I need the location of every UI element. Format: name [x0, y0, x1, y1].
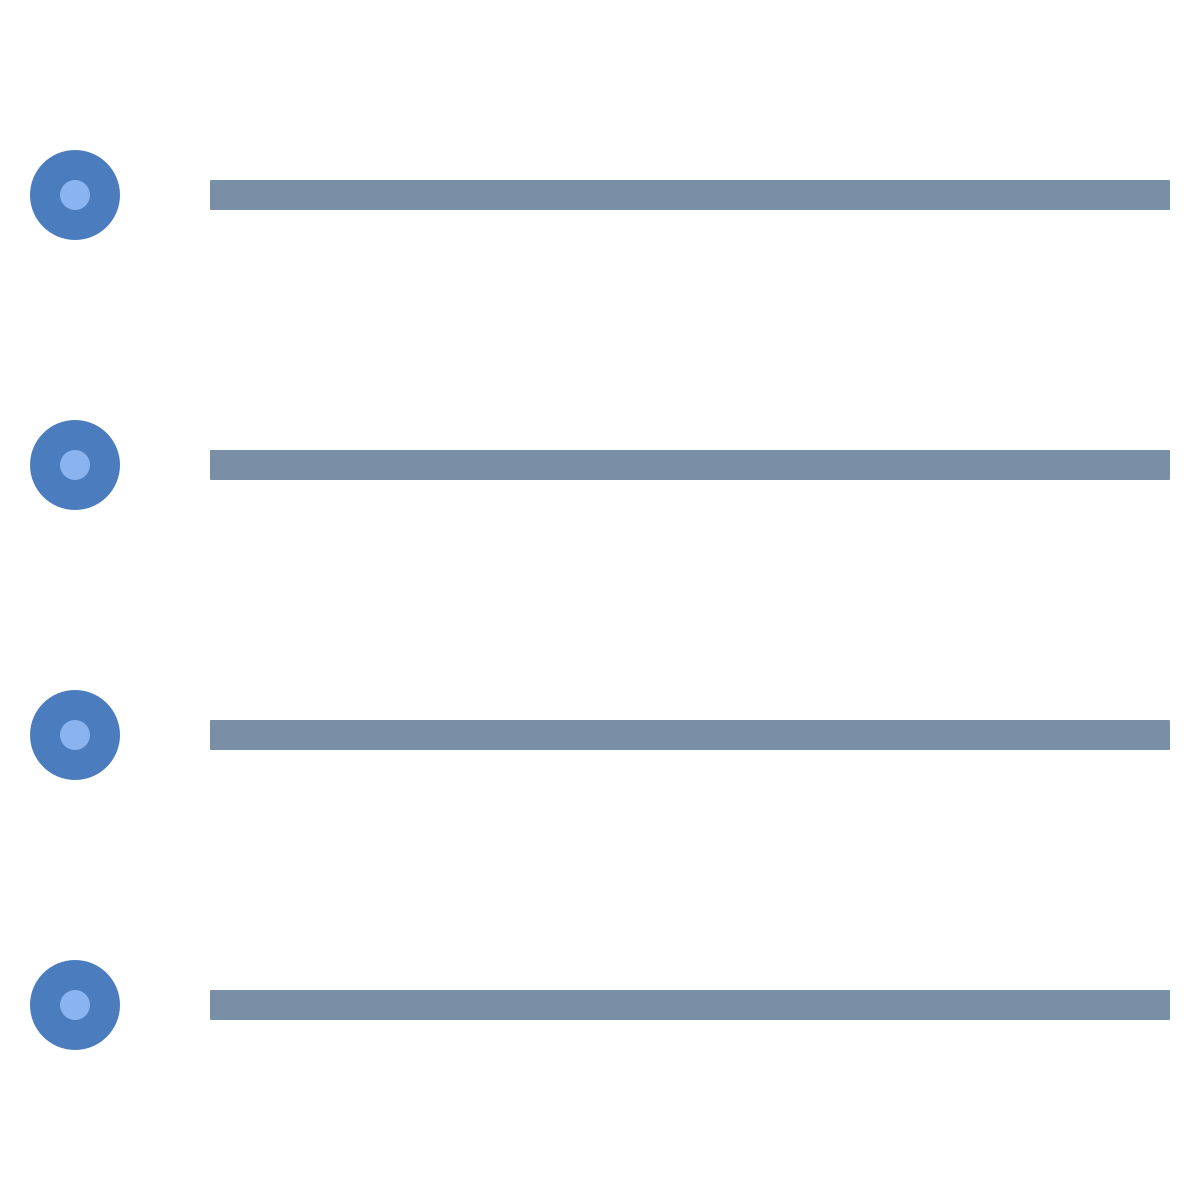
button[interactable]: Option 1, loading	[0, 150, 1200, 240]
button[interactable]: Option 4, loading	[0, 960, 1200, 1050]
button[interactable]: Option 3, loading	[0, 690, 1200, 780]
button[interactable]: Option 2, loading	[0, 420, 1200, 510]
